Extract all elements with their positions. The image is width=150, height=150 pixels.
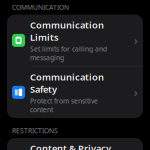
staticText: Content & Privacy Restrictions — [30, 142, 111, 150]
staticText: Set limits for calling and messaging — [30, 44, 107, 62]
staticText: COMMUNICATION — [12, 3, 69, 12]
button[interactable]: Content & Privacy Restrictions — [7, 138, 143, 150]
staticText: RESTRICTIONS — [12, 126, 58, 135]
staticText: › — [134, 85, 138, 99]
staticText: Communication Safety — [30, 71, 104, 95]
button[interactable]: Communication Safety — [7, 67, 143, 118]
staticText: › — [134, 33, 138, 47]
staticText: Protect from sensitive content — [30, 96, 98, 114]
staticText: Communication Limits — [30, 19, 104, 43]
button[interactable]: Communication Limits — [7, 15, 143, 66]
